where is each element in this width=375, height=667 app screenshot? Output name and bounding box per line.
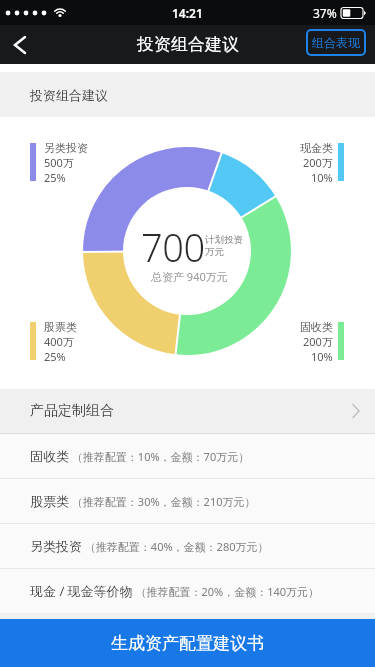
- button[interactable]: 产品定制组合: [0, 389, 375, 433]
- staticText: 37%: [313, 5, 337, 21]
- staticText: 400万: [44, 334, 74, 349]
- staticText: 另类投资 （推荐配置：40%，金额：280万元）: [30, 538, 269, 554]
- staticText: 10%: [311, 349, 333, 364]
- staticText: 另类投资: [44, 141, 88, 155]
- button[interactable]: 生成资产配置建议书: [0, 619, 375, 667]
- staticText: 产品定制组合: [30, 402, 114, 420]
- staticText: 组合表现: [312, 35, 360, 50]
- staticText: 总资产 940万元: [151, 269, 228, 284]
- staticText: 200万: [303, 334, 333, 349]
- staticText: 现金 / 现金等价物 （推荐配置：20%，金额：140万元）: [30, 582, 320, 600]
- staticText: 万元: [205, 246, 224, 258]
- staticText: 200万: [303, 155, 333, 170]
- staticText: 固收类: [300, 320, 333, 334]
- staticText: 固收类 （推荐配置：10%，金额：70万元）: [30, 448, 250, 464]
- button[interactable]: 固收类 （推荐配置：10%，金额：70万元）: [0, 434, 375, 478]
- button[interactable]: 另类投资 （推荐配置：40%，金额：280万元）: [0, 524, 375, 568]
- staticText: 股票类 （推荐配置：30%，金额：210万元）: [30, 493, 256, 509]
- staticText: 10%: [311, 170, 333, 185]
- staticText: 25%: [44, 349, 66, 364]
- staticText: 25%: [44, 170, 66, 185]
- staticText: 700: [141, 221, 205, 273]
- staticText: 股票类: [44, 320, 77, 334]
- button[interactable]: 股票类 （推荐配置：30%，金额：210万元）: [0, 479, 375, 523]
- staticText: 生成资产配置建议书: [111, 633, 264, 654]
- staticText: 投资组合建议: [30, 87, 108, 103]
- staticText: 计划投资: [205, 234, 243, 246]
- staticText: 500万: [44, 155, 74, 170]
- button[interactable]: [0, 25, 40, 64]
- button[interactable]: 组合表现: [306, 29, 366, 56]
- staticText: 投资组合建议: [137, 34, 239, 55]
- staticText: 14:21: [172, 5, 203, 21]
- staticText: 现金类: [300, 141, 333, 155]
- button[interactable]: 现金 / 现金等价物 （推荐配置：20%，金额：140万元）: [0, 569, 375, 613]
